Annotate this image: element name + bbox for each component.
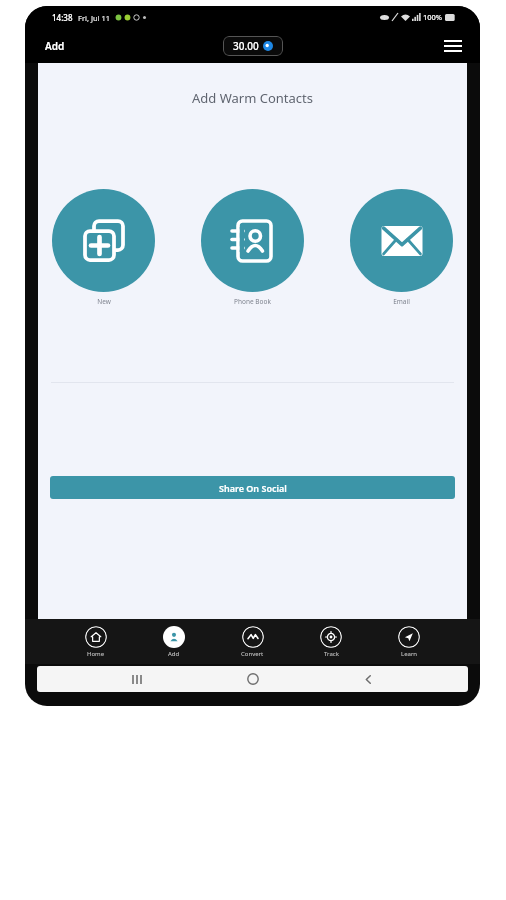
button[interactable]: Email (350, 189, 453, 306)
button[interactable]: Add (39, 35, 71, 57)
staticText: Convert (241, 650, 264, 658)
staticText: Add (168, 650, 180, 658)
staticText: Email (393, 297, 410, 306)
button[interactable]: Share On Social (50, 476, 455, 499)
staticText: Home (87, 650, 105, 658)
staticText: 30.00 (233, 39, 259, 53)
staticText: Add (45, 39, 65, 53)
staticText: Track (324, 650, 339, 658)
staticText: Share On Social (219, 482, 287, 494)
staticText: Fri, Jul 11 (78, 13, 111, 23)
staticText: New (97, 297, 111, 306)
staticText: Add Warm Contacts (192, 89, 313, 107)
staticText: Learn (401, 650, 418, 658)
staticText: 14:38 (52, 12, 73, 23)
button[interactable]: Learn (392, 626, 426, 658)
button[interactable]: Convert (235, 626, 270, 658)
button[interactable]: Phone Book (201, 189, 304, 306)
button[interactable]: Add (157, 626, 191, 658)
staticText: 100% (423, 12, 443, 22)
button[interactable]: Back (353, 666, 383, 692)
button[interactable]: Home (79, 626, 113, 658)
button[interactable]: Menu (440, 36, 466, 56)
button[interactable]: 30.00 (223, 36, 283, 56)
staticText: Phone Book (234, 297, 271, 306)
button[interactable]: Track (314, 626, 348, 658)
button[interactable]: Recents (122, 666, 152, 692)
button[interactable]: New (52, 189, 155, 306)
button[interactable]: Home (238, 666, 268, 692)
